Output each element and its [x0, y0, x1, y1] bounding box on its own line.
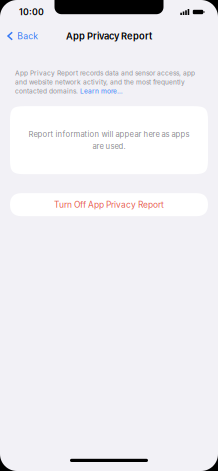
staticText: App Privacy Report [66, 30, 152, 42]
staticText: contacted domains. [15, 87, 80, 95]
staticText: Learn more… [80, 87, 123, 95]
staticText: are used. [92, 141, 125, 151]
staticText: Back [17, 31, 38, 41]
button[interactable]: Back [0, 28, 44, 44]
button[interactable]: Turn Off App Privacy Report [10, 193, 208, 216]
staticText: App Privacy Report records data and sens… [15, 69, 195, 77]
staticText: 10:00 [19, 7, 44, 17]
staticText: Turn Off App Privacy Report [54, 200, 164, 210]
staticText: and website network activity, and the mo… [15, 78, 185, 86]
staticText: Report information will appear here as a… [28, 130, 189, 139]
button[interactable]: Learn more… [80, 87, 123, 95]
